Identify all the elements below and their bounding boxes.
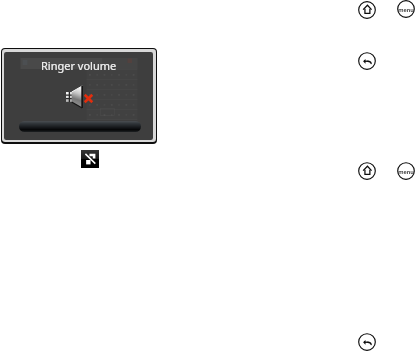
button[interactable]: Home [358,162,376,180]
button[interactable]: Back [358,333,376,351]
staticText: menu [398,168,414,175]
staticText: menu [398,6,414,13]
button[interactable]: Silent mode [81,150,99,168]
button[interactable]: Menu [397,162,415,180]
button[interactable]: Home [358,1,376,19]
staticText: Ringer volume [41,58,117,73]
button[interactable]: Volume slider [19,121,141,132]
button[interactable]: Menu [397,0,415,18]
button[interactable]: Back [358,52,376,70]
button[interactable]: Ringer volume [1,48,157,144]
